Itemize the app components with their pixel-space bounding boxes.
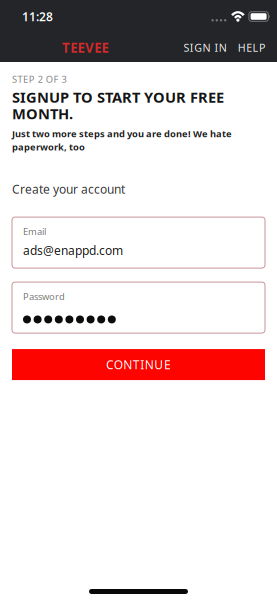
staticText: Email bbox=[23, 225, 46, 237]
button[interactable]: Password bbox=[12, 282, 265, 333]
button[interactable]: TEEVEE bbox=[57, 33, 113, 62]
staticText: STEP 2 OF 3 bbox=[12, 73, 66, 85]
staticText: CONTINUE bbox=[106, 357, 171, 372]
staticText: 11:28 bbox=[22, 8, 53, 24]
staticText: TEEVEE bbox=[62, 39, 108, 56]
button[interactable]: CONTINUE bbox=[12, 349, 265, 380]
button[interactable]: SIGN IN bbox=[179, 34, 231, 61]
staticText: SIGNUP TO START YOUR FREE MONTH. bbox=[12, 87, 224, 123]
staticText: Just two more steps and you are done! We… bbox=[12, 127, 232, 153]
staticText: Password bbox=[23, 290, 65, 302]
button[interactable]: Email bbox=[12, 217, 265, 268]
staticText: ads@enappd.com bbox=[23, 242, 123, 258]
staticText: Create your account bbox=[12, 181, 125, 197]
staticText: HELP bbox=[238, 40, 265, 55]
staticText: SIGN IN bbox=[183, 40, 227, 55]
button[interactable]: HELP bbox=[234, 34, 269, 61]
